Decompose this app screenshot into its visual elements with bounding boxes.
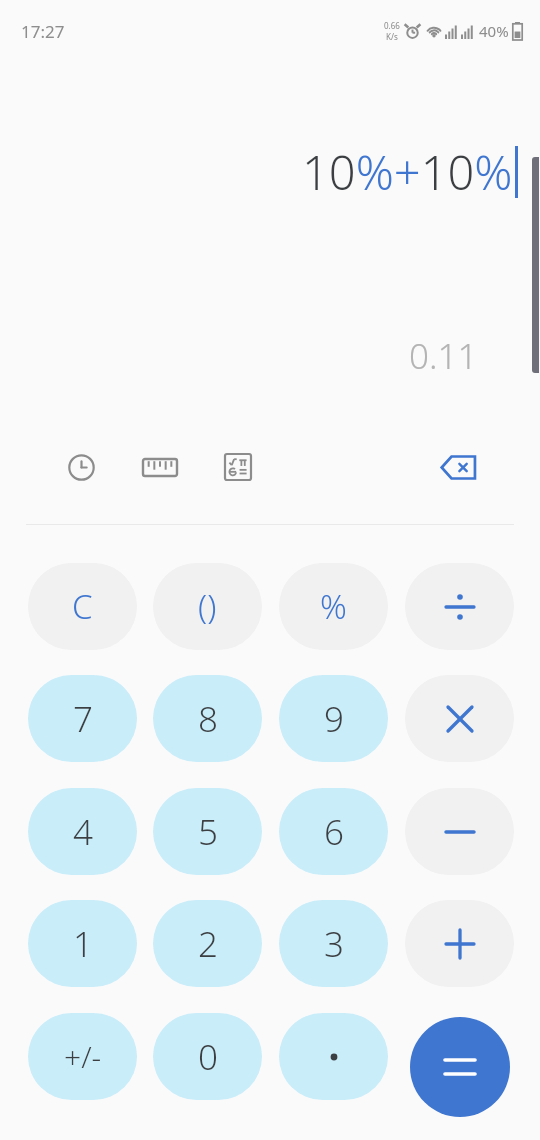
staticText: 0.66 <box>384 20 400 31</box>
button[interactable]: Scientific keypad <box>214 443 262 491</box>
button[interactable]: 3 <box>279 900 388 987</box>
button[interactable]: C <box>28 563 137 650</box>
button[interactable]: Unit converter <box>136 443 184 491</box>
button[interactable]: 5 <box>153 788 262 875</box>
staticText: 2 <box>198 920 218 968</box>
button[interactable]: Divide <box>405 563 514 650</box>
button[interactable]: Plus minus <box>28 1013 137 1100</box>
staticText: 1 <box>73 920 93 968</box>
button[interactable]: 7 <box>28 675 137 762</box>
staticText: % <box>320 584 347 629</box>
button[interactable]: % <box>279 563 388 650</box>
button[interactable]: Multiply <box>405 675 514 762</box>
staticText: 7 <box>73 695 93 743</box>
staticText: 0.11 <box>409 332 478 380</box>
button[interactable]: () <box>153 563 262 650</box>
staticText: 0 <box>198 1033 218 1081</box>
button[interactable]: History <box>57 443 105 491</box>
staticText: 40% <box>479 21 509 41</box>
button[interactable]: 2 <box>153 900 262 987</box>
button[interactable]: 6 <box>279 788 388 875</box>
staticText: () <box>198 584 217 629</box>
button[interactable]: Minus <box>405 788 514 875</box>
staticText: 4 <box>73 808 93 856</box>
staticText: +/- <box>64 1036 102 1077</box>
staticText: 3 <box>324 920 344 968</box>
button[interactable]: 4 <box>28 788 137 875</box>
staticText: 9 <box>324 695 344 743</box>
staticText: 6 <box>324 808 344 856</box>
staticText: 5 <box>198 808 218 856</box>
button[interactable]: Decimal point <box>279 1013 388 1100</box>
button[interactable]: Plus <box>405 900 514 987</box>
button[interactable]: Equals <box>410 1017 510 1117</box>
button[interactable]: 9 <box>279 675 388 762</box>
staticText: 10%+10% <box>302 140 513 204</box>
button[interactable]: 0 <box>153 1013 262 1100</box>
button[interactable]: Backspace <box>434 443 482 491</box>
staticText: K/s <box>386 31 398 42</box>
staticText: 8 <box>198 695 218 743</box>
button[interactable]: 8 <box>153 675 262 762</box>
button[interactable]: 1 <box>28 900 137 987</box>
staticText: 17:27 <box>21 20 65 43</box>
staticText: C <box>72 584 93 629</box>
